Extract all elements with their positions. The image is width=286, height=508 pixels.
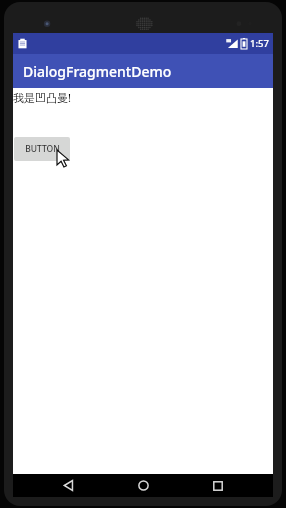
button[interactable]: Home [123, 474, 163, 497]
staticText: BUTTON [25, 143, 60, 155]
staticText: 1:57 [250, 37, 269, 50]
button[interactable]: Back [48, 474, 88, 497]
button[interactable]: BUTTON [14, 137, 70, 161]
button[interactable]: Recent apps [198, 474, 238, 497]
staticText: 我是凹凸曼! [13, 90, 71, 105]
staticText: DialogFragmentDemo [23, 62, 172, 81]
